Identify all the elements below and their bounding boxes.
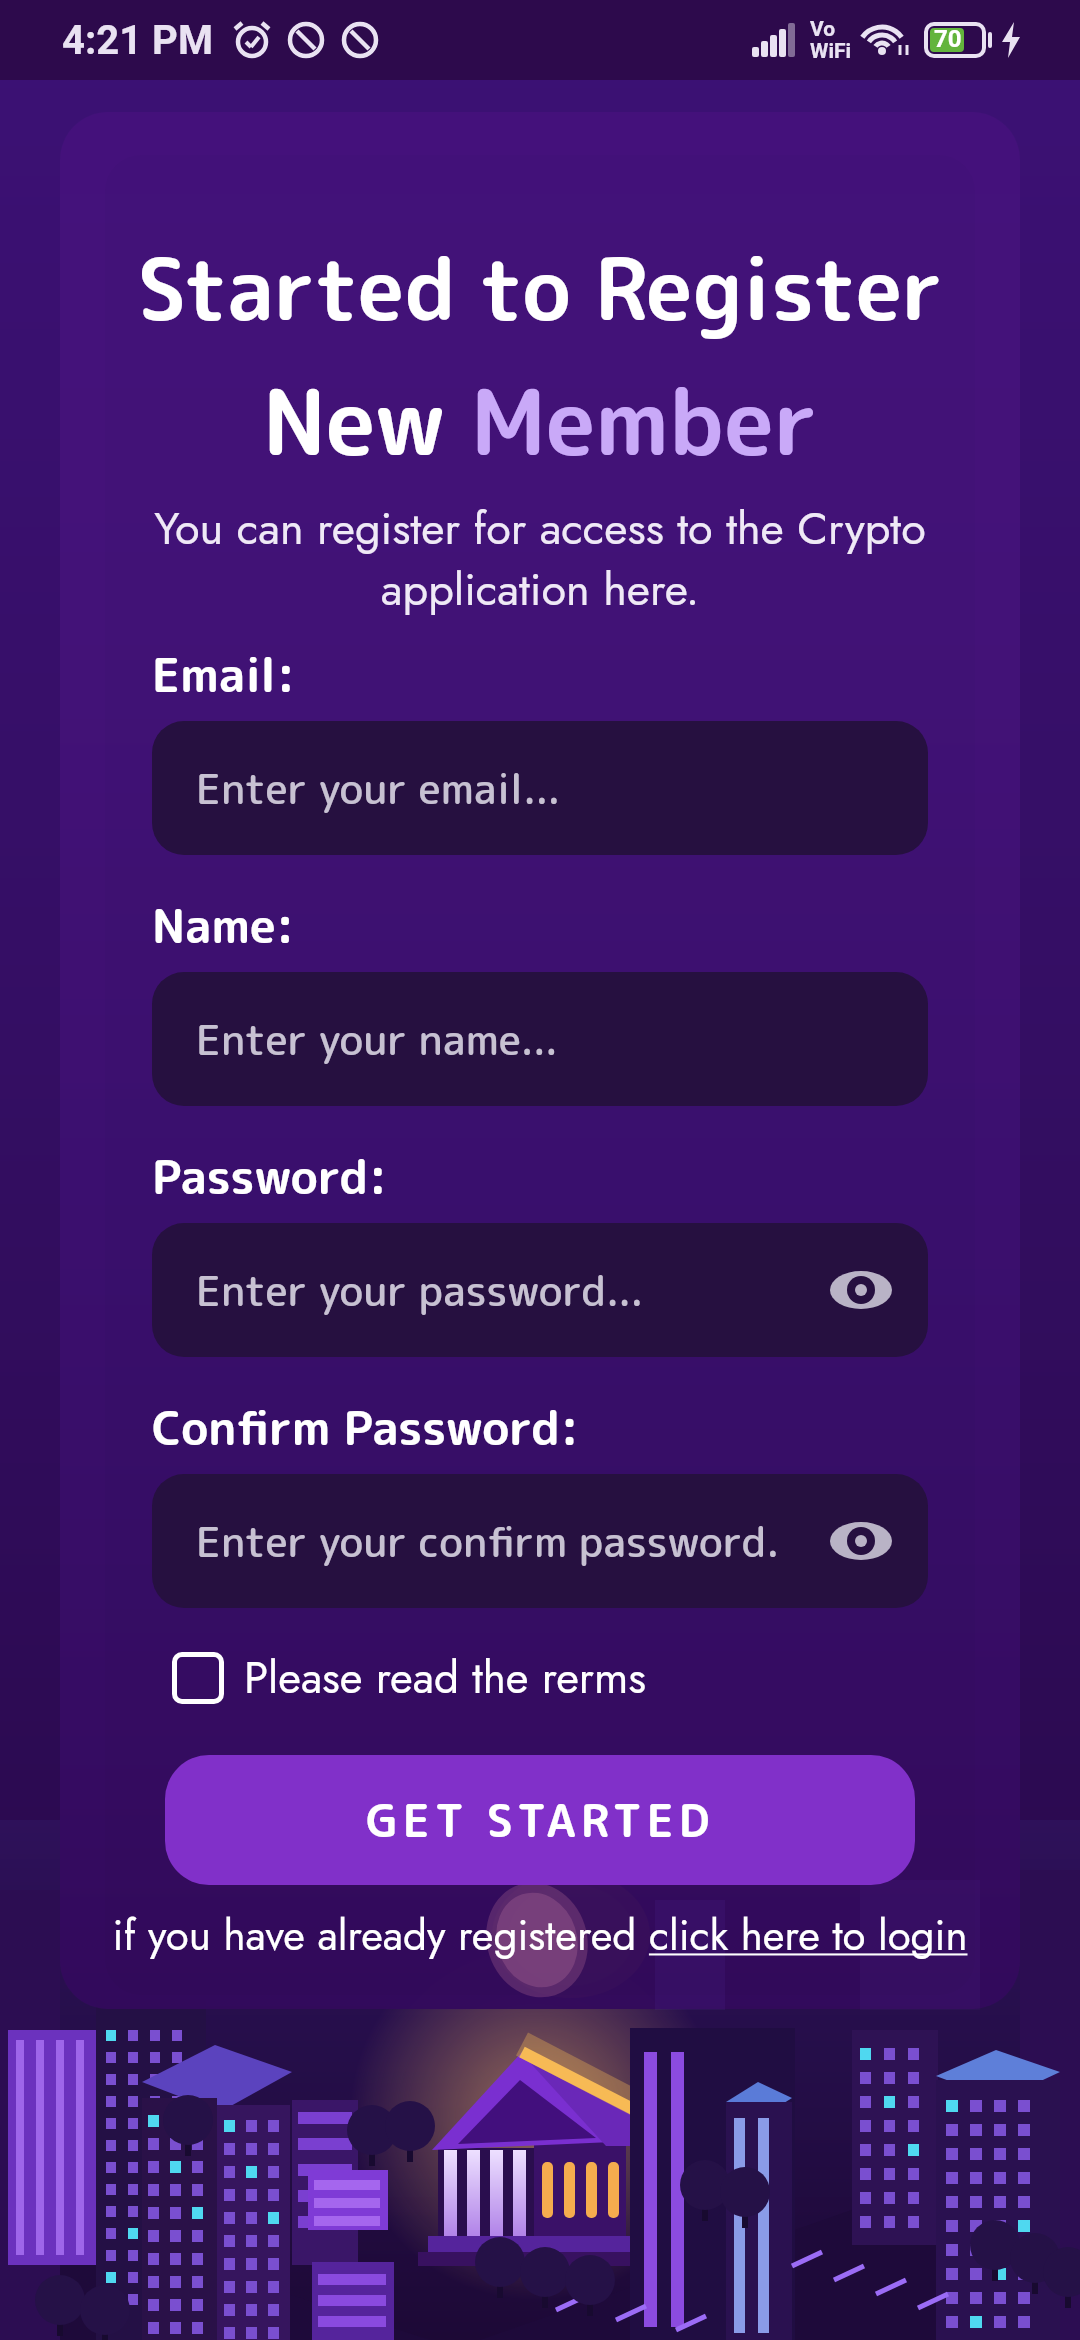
- button[interactable]: GET STARTED: [165, 1755, 915, 1885]
- staticText: New Member: [0, 358, 1080, 484]
- staticText: Name:: [152, 892, 295, 958]
- staticText: Enter your confirm password.: [196, 1512, 780, 1571]
- staticText: Enter your password...: [196, 1261, 644, 1320]
- staticText: 70: [934, 25, 962, 53]
- staticText: Enter your name...: [196, 1010, 559, 1069]
- staticText: GET STARTED: [366, 1789, 715, 1852]
- staticText: 4:21 PM: [62, 17, 213, 64]
- staticText: Vo WiFi: [810, 17, 852, 64]
- staticText: Started to Register: [0, 230, 1080, 347]
- button[interactable]: Enter your email...: [152, 721, 928, 855]
- staticText: You can register for access to the Crypt…: [0, 496, 1080, 622]
- staticText: Confirm Password:: [152, 1394, 580, 1460]
- button[interactable]: if you have already registered click her…: [0, 1905, 1080, 1966]
- button[interactable]: Please read the rerms: [172, 1646, 646, 1710]
- staticText: Please read the rerms: [244, 1646, 646, 1710]
- staticText: Email:: [152, 641, 296, 707]
- staticText: Password:: [152, 1143, 388, 1209]
- button[interactable]: Enter your name...: [152, 972, 928, 1106]
- button[interactable]: Enter your confirm password.: [152, 1474, 928, 1608]
- staticText: Enter your email...: [196, 759, 561, 818]
- button[interactable]: Enter your password...: [152, 1223, 928, 1357]
